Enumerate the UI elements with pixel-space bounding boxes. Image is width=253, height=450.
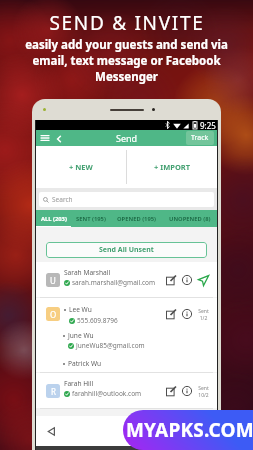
staticText: Search [52,195,73,204]
button[interactable]: Info [179,306,195,322]
button[interactable]: R [36,373,217,408]
staticText: OPENED (195) [117,215,157,223]
button[interactable]: + NEW [36,146,126,188]
button[interactable]: ALL (203) [36,210,71,227]
staticText: JuneWu85@gmail.com [76,341,145,350]
button[interactable]: UNOPENED (8) [163,210,217,227]
button[interactable]: SENT (195) [71,210,111,227]
staticText: U [50,275,56,286]
button[interactable]: Send All Unsent [46,242,207,258]
button[interactable]: Search [39,192,214,207]
staticText: + NEW [69,162,93,172]
staticText: R [51,386,56,397]
staticText: 9:25 [200,120,216,130]
staticText: sarah.marshall@gmail.com [72,278,156,287]
staticText: June Wu [68,331,94,340]
button[interactable]: Info [179,272,195,288]
button[interactable]: Info [179,383,195,399]
button[interactable]: Menu [38,131,52,145]
staticText: + IMPORT [154,162,191,172]
button[interactable]: Send [195,272,211,288]
button[interactable]: Back [44,424,58,438]
staticText: Track [191,133,209,143]
staticText: UNOPENED (8) [169,215,211,223]
staticText: ALL (203) [41,215,67,223]
staticText: 555.609.8796 [77,316,118,325]
staticText: Patrick Wu [68,359,102,368]
button[interactable]: OPENED (195) [111,210,163,227]
staticText: Send All Unsent [99,245,154,255]
staticText: Farah Hill [64,379,94,388]
staticText: SENT (195) [76,215,106,223]
staticText: O [50,309,57,320]
staticText: SEND & INVITE [49,10,205,36]
staticText: Sent 1/2 [198,308,209,321]
staticText: MYAPKS.COM [126,417,253,443]
button[interactable]: + IMPORT [127,146,217,188]
staticText: Sarah Marshall [64,268,111,277]
staticText: Sent 10/2 [198,385,209,398]
staticText: farahhill@outlook.com [72,389,142,398]
button[interactable]: Edit [163,306,179,322]
staticText: easily add your guests and send via emai… [25,37,228,85]
button[interactable]: Track [186,131,214,145]
button[interactable]: Edit [163,272,179,288]
button[interactable]: O [36,298,217,329]
button[interactable]: U [36,262,217,297]
staticText: Send [116,132,138,144]
button[interactable]: Edit [163,383,179,399]
staticText: Lee Wu [69,305,92,314]
button[interactable]: Back [52,132,65,145]
